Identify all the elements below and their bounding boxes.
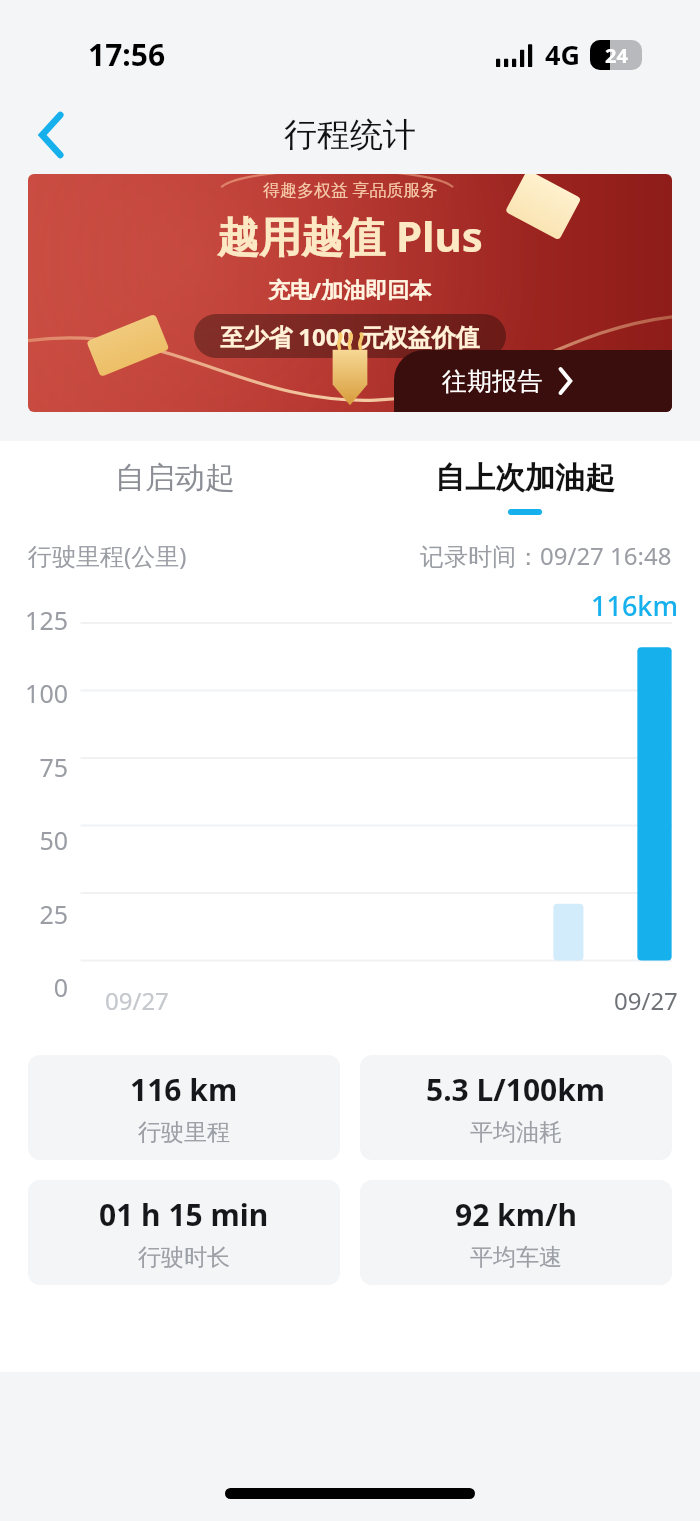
staticText: 116 km: [130, 1069, 238, 1110]
button[interactable]: 5.3 L/100km: [360, 1055, 672, 1160]
staticText: 往期报告: [442, 366, 542, 397]
button[interactable]: Back: [22, 105, 82, 165]
staticText: 自上次加油起: [435, 459, 615, 497]
button[interactable]: 得趣多权益 享品质服务: [28, 174, 672, 412]
button[interactable]: 01 h 15 min: [28, 1180, 340, 1285]
staticText: 17:56: [88, 34, 166, 75]
staticText: 50: [0, 823, 68, 857]
button[interactable]: 92 km/h: [360, 1180, 672, 1285]
button[interactable]: 自上次加油起: [350, 441, 700, 533]
staticText: 行驶里程: [138, 1118, 230, 1147]
staticText: 5.3 L/100km: [426, 1069, 606, 1110]
staticText: 09/27: [614, 984, 678, 1017]
staticText: 25: [0, 897, 68, 931]
staticText: 100: [0, 676, 68, 710]
staticText: 行驶时长: [138, 1243, 230, 1272]
staticText: 自启动起: [115, 459, 235, 497]
staticText: 75: [0, 750, 68, 784]
staticText: 平均油耗: [470, 1118, 562, 1147]
staticText: 116km: [591, 587, 678, 624]
staticText: 行程统计: [284, 114, 416, 156]
staticText: 92 km/h: [455, 1194, 577, 1235]
staticText: 充电/加油即回本: [268, 274, 432, 304]
staticText: 24: [605, 42, 628, 69]
staticText: 记录时间：09/27 16:48: [420, 539, 672, 572]
button[interactable]: 116 km: [28, 1055, 340, 1160]
staticText: 平均车速: [470, 1243, 562, 1272]
staticText: 至少省 1000 元权益价值: [220, 320, 480, 353]
staticText: 125: [0, 603, 68, 637]
staticText: 行驶里程(公里): [28, 539, 187, 572]
staticText: 0: [0, 970, 68, 1004]
staticText: 09/27: [105, 984, 169, 1017]
staticText: 01 h 15 min: [99, 1194, 269, 1235]
button[interactable]: 自启动起: [0, 441, 350, 533]
staticText: 得趣多权益 享品质服务: [263, 178, 438, 201]
button[interactable]: 往期报告: [394, 350, 672, 412]
staticText: 4G: [545, 36, 580, 73]
staticText: 越用越值 Plus: [217, 207, 483, 264]
